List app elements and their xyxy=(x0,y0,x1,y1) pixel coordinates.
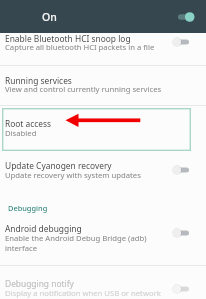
staticText: Debugging notify xyxy=(5,278,74,289)
staticText: Update Cyanogen recovery xyxy=(5,160,112,171)
staticText: Capture all bluetooth HCI packets in a f… xyxy=(5,42,155,52)
staticText: Running services xyxy=(5,75,72,86)
staticText: Update recovery with system updates xyxy=(5,170,141,180)
button[interactable]: Toggle setting xyxy=(168,33,196,51)
button[interactable] xyxy=(2,108,191,151)
button[interactable]: Toggle setting xyxy=(168,224,196,242)
staticText: Root access xyxy=(5,118,52,129)
staticText: Android debugging xyxy=(5,223,82,234)
staticText: View and control currently running servi… xyxy=(5,84,162,94)
staticText: Debugging xyxy=(8,203,48,213)
staticText: Disabled xyxy=(5,128,37,138)
staticText: On xyxy=(42,10,57,24)
button[interactable]: Toggle setting xyxy=(168,161,196,179)
button[interactable]: Master switch, on xyxy=(166,7,196,27)
staticText: Display a notification when USB or netwo… xyxy=(5,288,161,298)
button[interactable]: Toggle setting xyxy=(168,280,196,298)
staticText: Enable the Android Debug Bridge (adb) in… xyxy=(5,233,147,253)
staticText: Enable Bluetooth HCI snoop log xyxy=(5,33,131,44)
